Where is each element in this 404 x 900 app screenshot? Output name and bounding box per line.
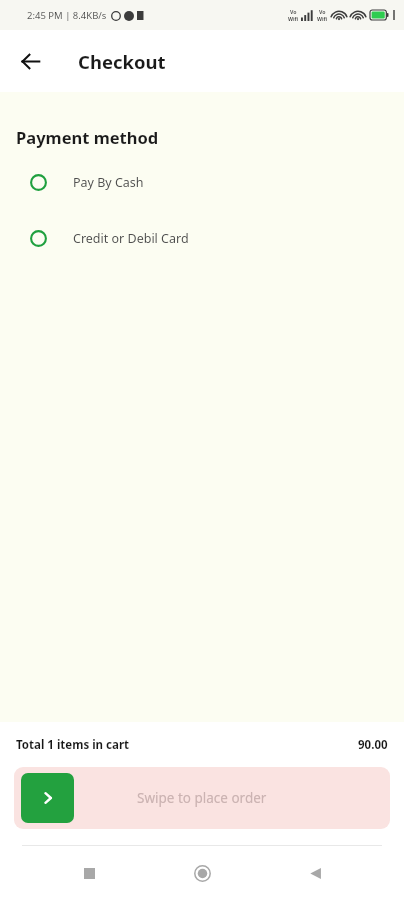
staticText: Checkout [78,49,166,74]
staticText: Swipe to place order [137,789,267,807]
button[interactable]: Pay By Cash [0,170,404,195]
staticText: Vo [290,8,297,15]
button[interactable]: Credit or Debil Card [0,226,404,251]
staticText: Payment method [16,126,159,148]
staticText: Pay By Cash [73,174,144,191]
staticText: Wifi [317,15,328,22]
button[interactable]: Back [8,39,52,83]
button[interactable]: Swipe to place order [14,767,390,829]
button[interactable]: Home [178,849,226,897]
staticText: Credit or Debil Card [73,230,189,247]
staticText: Vo [319,8,326,15]
staticText: Total 1 items in cart [16,737,130,753]
staticText: Wifi [288,15,299,22]
staticText: 2:45 PM | 8.4KB/s [27,9,107,22]
staticText: 90.00 [358,737,388,753]
button[interactable]: Back [291,849,339,897]
button[interactable]: Recent apps [65,849,113,897]
